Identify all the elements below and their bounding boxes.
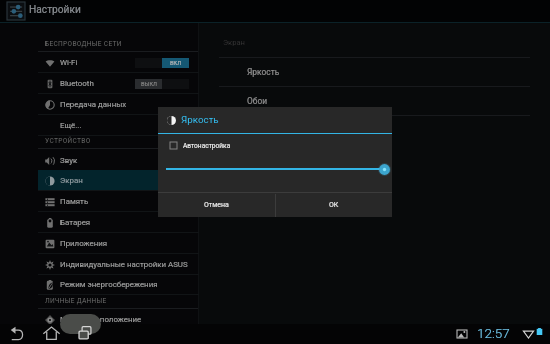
staticText: Передача данных	[60, 100, 127, 109]
staticText: Батарея	[60, 218, 91, 227]
button[interactable]: Отмена	[158, 193, 274, 217]
staticText: Режим энергосбережения	[60, 280, 158, 289]
button[interactable]: Автонастройка	[170, 142, 177, 149]
staticText: Настройки	[29, 4, 81, 16]
button[interactable]: Мое местоположение	[0, 309, 199, 330]
button[interactable]: Wi-Fi	[0, 52, 199, 73]
staticText: Мое местоположение	[60, 315, 142, 324]
staticText: Отмена	[204, 201, 229, 209]
button[interactable]: Recent apps	[77, 325, 94, 342]
staticText: Экран	[60, 176, 83, 185]
staticText: Bluetooth	[60, 79, 94, 88]
staticText: Память	[60, 197, 89, 206]
staticText: Приложения	[60, 239, 108, 248]
staticText: ВКЛ	[170, 60, 182, 67]
button[interactable]: Режим энергосбережения	[0, 274, 199, 295]
button[interactable]: Индивидуальные настройки ASUS	[0, 254, 199, 275]
button[interactable]: Обои	[199, 86, 550, 115]
staticText: Автонастройка	[183, 142, 231, 150]
button[interactable]: Ещё...	[0, 115, 199, 136]
staticText: БЕСПРОВОДНЫЕ СЕТИ	[45, 40, 122, 48]
staticText: Wi-Fi	[60, 58, 78, 67]
staticText: Яркость	[247, 67, 280, 77]
button[interactable]: Память	[0, 191, 199, 212]
staticText: УСТРОЙСТВО	[45, 137, 91, 145]
staticText: Яркость	[181, 114, 219, 125]
staticText: 12:57	[477, 325, 510, 341]
button[interactable]: Bluetooth	[0, 73, 199, 94]
staticText: Обои	[247, 96, 268, 106]
button[interactable]: Приложения	[0, 233, 199, 254]
button[interactable]: ОК	[276, 193, 392, 217]
button[interactable]: Звук	[0, 150, 199, 171]
button[interactable]: Settings	[7, 2, 25, 20]
button[interactable]: ВЫКЛ	[135, 79, 189, 89]
staticText: ОК	[329, 201, 339, 209]
button[interactable]: Батарея	[0, 212, 199, 233]
staticText: Индивидуальные настройки ASUS	[60, 260, 188, 269]
staticText: Звук	[60, 156, 78, 165]
button[interactable]: Экран	[0, 170, 199, 191]
button[interactable]: Передача данных	[0, 94, 199, 115]
staticText: ВЫКЛ	[141, 81, 157, 88]
button[interactable]: Яркость	[199, 57, 550, 86]
staticText: ЛИЧНЫЕ ДАННЫЕ	[45, 297, 107, 305]
button[interactable]: ВКЛ	[135, 58, 189, 68]
button[interactable]: Back	[8, 325, 25, 342]
button[interactable]: Home	[43, 325, 60, 342]
staticText: Экран	[223, 38, 245, 47]
staticText: Ещё...	[60, 121, 82, 130]
